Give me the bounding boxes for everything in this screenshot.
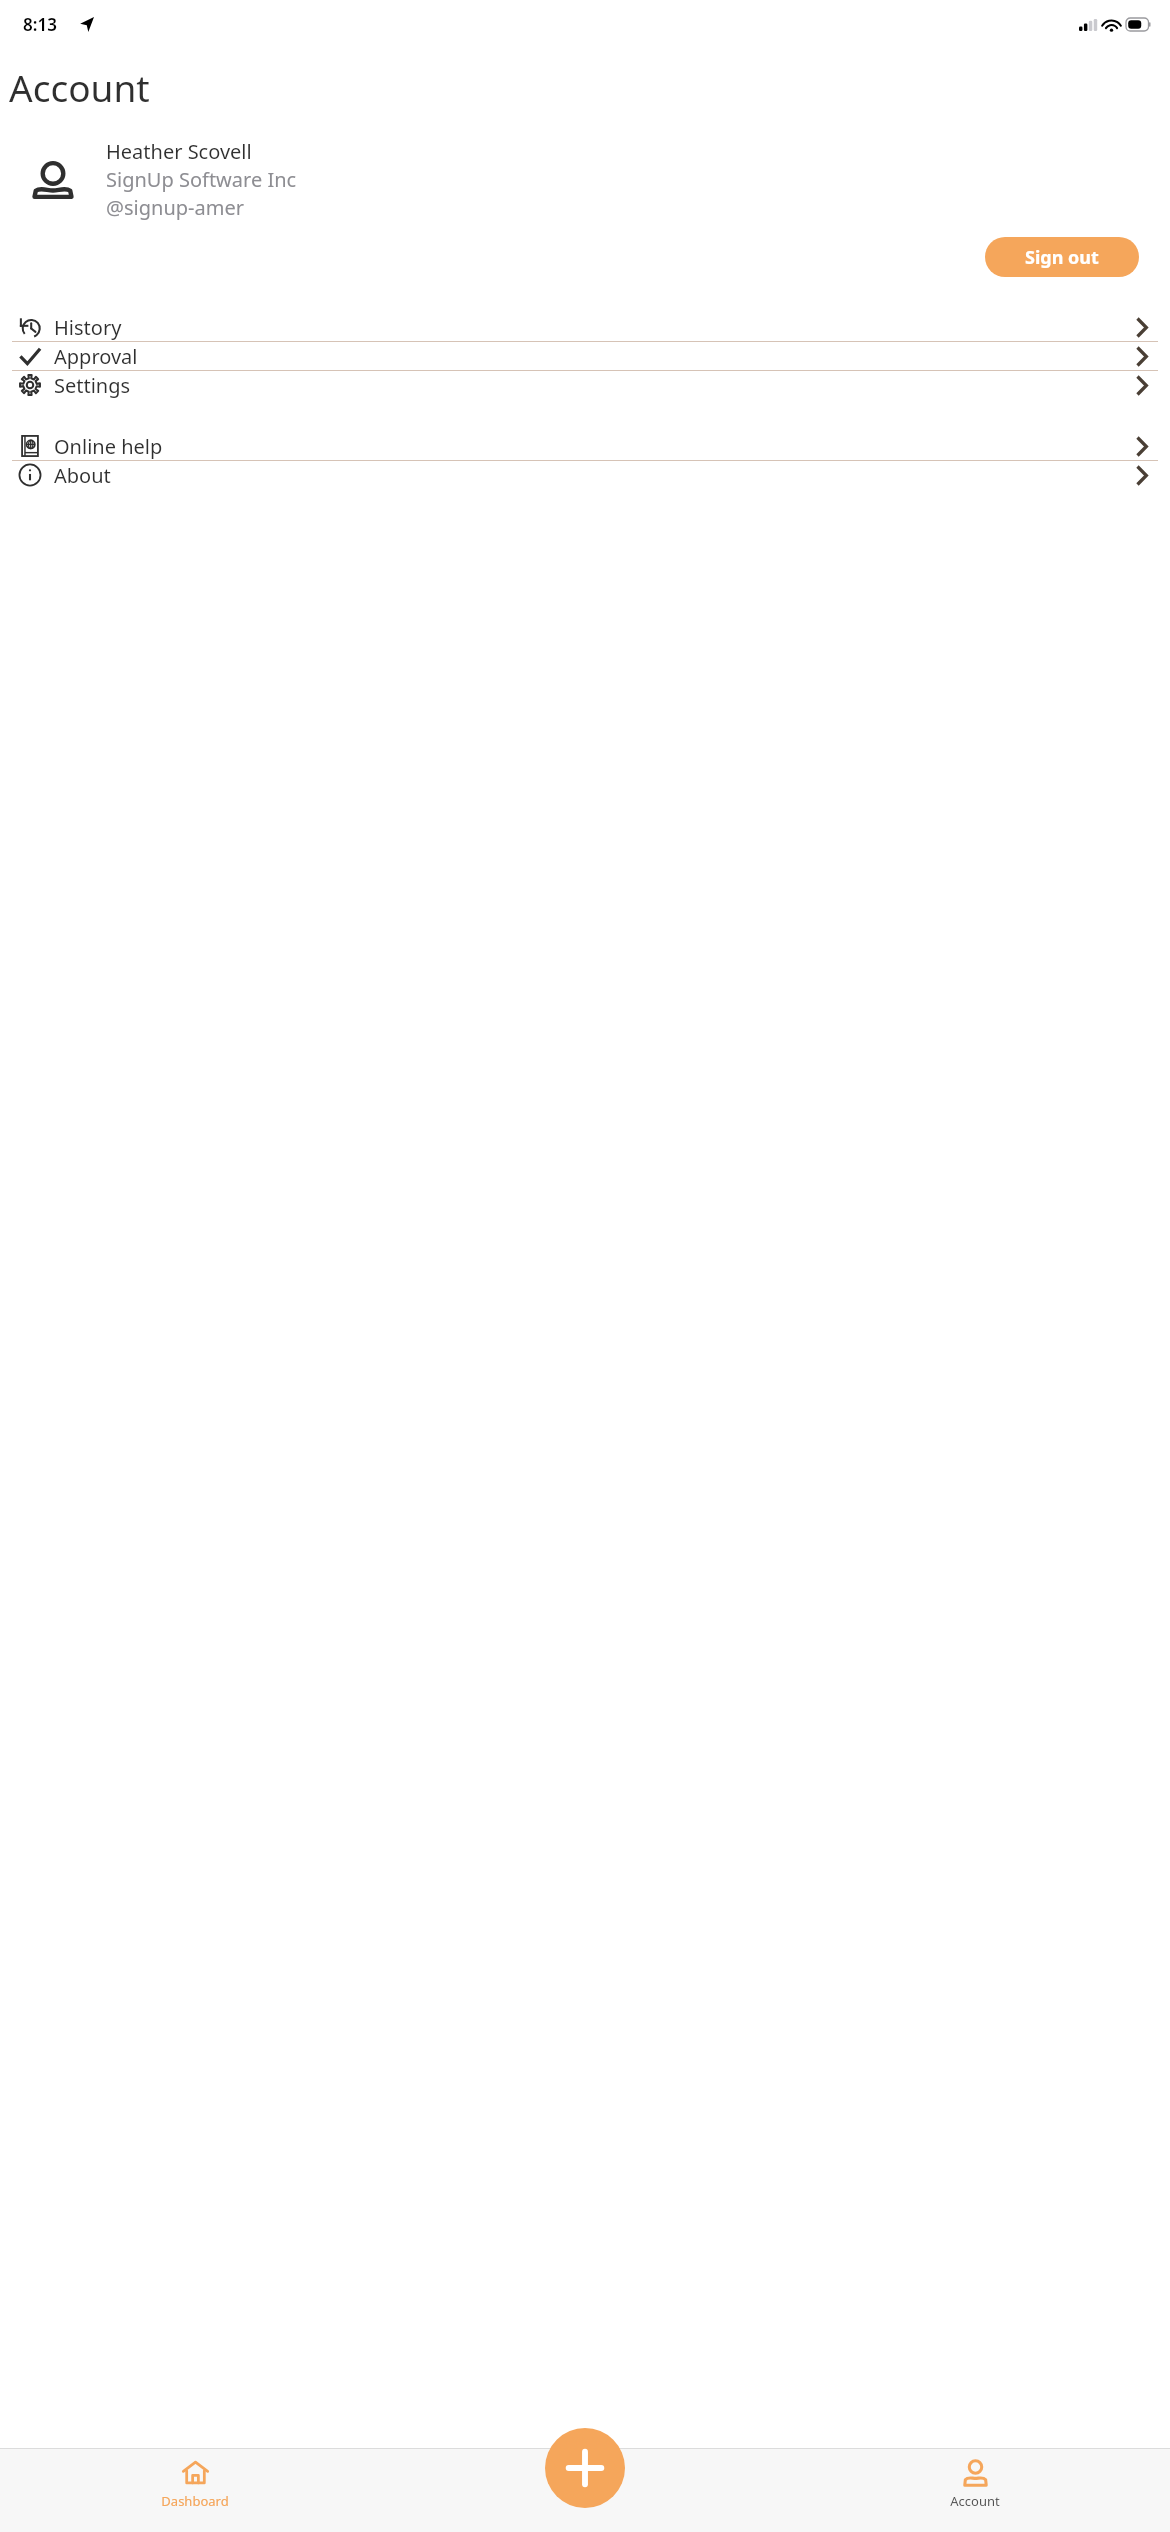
staticText: Approval [54,343,138,370]
button[interactable]: History [0,313,1170,341]
staticText: Heather Scovell [106,138,252,165]
staticText: Sign out [1025,245,1099,270]
staticText: @signup-amer [106,194,244,221]
button[interactable]: Online help [0,432,1170,460]
button[interactable]: Account [780,2448,1170,2532]
button[interactable]: Settings [0,371,1170,399]
staticText: Account [950,2492,1000,2510]
staticText: Dashboard [161,2492,229,2510]
staticText: About [54,462,111,489]
staticText: Settings [54,372,131,399]
staticText: Account [9,62,150,112]
staticText: SignUp Software Inc [106,166,297,193]
staticText: 8:13 [23,13,57,36]
button[interactable]: About [0,461,1170,489]
staticText: Online help [54,433,163,460]
button[interactable]: Add [545,2428,625,2508]
button[interactable]: Dashboard [0,2448,390,2532]
button[interactable]: Sign out [985,237,1139,277]
button[interactable]: Approval [0,342,1170,370]
staticText: History [54,314,122,341]
